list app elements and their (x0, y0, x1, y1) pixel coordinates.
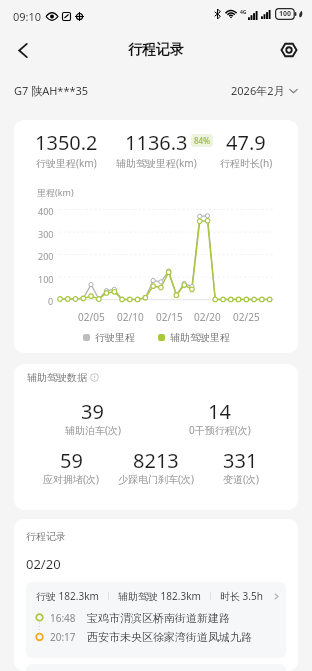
staticText: 行驶 182.3km (36, 589, 99, 603)
staticText: 行驶里程 (95, 331, 135, 344)
staticText: 8213 (133, 447, 179, 474)
button[interactable]: 2026年2月 (231, 83, 298, 98)
staticText: 300 (38, 228, 54, 240)
staticText: 里程(km) (37, 186, 74, 198)
staticText: 02/10 (117, 310, 144, 324)
staticText: 辅助驾驶里程 (170, 331, 230, 344)
staticText: 1136.3 (125, 129, 188, 156)
staticText: 02/20 (194, 310, 221, 324)
staticText: 47.9 (226, 129, 266, 156)
staticText: 59 (60, 447, 83, 474)
button[interactable]: Settings (274, 35, 304, 65)
staticText: G7 陕AH***35 (14, 83, 89, 98)
staticText: 02/25 (233, 310, 260, 324)
staticText: 0干预行程(次) (189, 423, 251, 437)
staticText: 行程记录 (128, 41, 184, 59)
staticText: 行程时长(h) (220, 156, 273, 170)
staticText: 84% (194, 135, 210, 146)
staticText: 2026年2月 (231, 83, 285, 98)
staticText: 200 (38, 250, 54, 262)
staticText: 14 (208, 398, 231, 425)
staticText: 行程记录 (26, 530, 66, 543)
staticText: 02/15 (156, 310, 183, 324)
staticText: 331 (223, 447, 258, 474)
button[interactable]: Back (7, 34, 39, 66)
staticText: 1350.2 (35, 129, 98, 156)
staticText: 39 (81, 398, 104, 425)
staticText: 少踩电门刹车(次) (118, 472, 194, 486)
staticText: 应对拥堵(次) (43, 472, 99, 486)
staticText: 行驶里程(km) (36, 156, 97, 170)
staticText: 西安市未央区徐家湾街道凤城九路 (87, 630, 252, 644)
staticText: 辅助驾驶数据 (27, 371, 87, 384)
staticText: 09:10 (13, 9, 42, 24)
staticText: 辅助驾驶 182.3km (118, 589, 201, 603)
staticText: 0 (48, 295, 54, 307)
button[interactable]: G7 陕AH***35 (14, 83, 89, 98)
button[interactable]: 行驶 182.3km (26, 582, 286, 658)
staticText: 辅助驾驶里程(km) (116, 156, 197, 170)
staticText: 宝鸡市渭滨区桥南街道新建路 (87, 611, 230, 625)
staticText: 400 (38, 205, 54, 217)
staticText: 辅助泊车(次) (65, 423, 121, 437)
staticText: 20:17 (50, 630, 76, 644)
staticText: 变道(次) (223, 472, 259, 486)
staticText: 16:48 (50, 611, 76, 625)
staticText: 时长 3.5h (220, 589, 263, 603)
staticText: 100 (279, 9, 292, 19)
staticText: 02/05 (78, 310, 105, 324)
staticText: 02/20 (26, 555, 61, 573)
staticText: 100 (38, 273, 54, 285)
staticText: 4G (240, 9, 247, 16)
